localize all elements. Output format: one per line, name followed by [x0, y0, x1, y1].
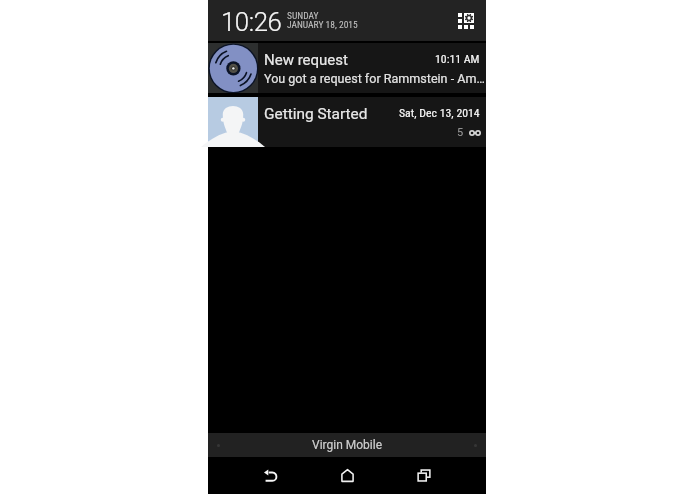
staticText: JANUARY 18, 2015: [287, 19, 358, 30]
staticText: Sat, Dec 13, 2014: [399, 106, 480, 120]
staticText: 5: [457, 126, 464, 139]
button[interactable]: Home: [322, 457, 372, 494]
button[interactable]: Quick settings: [452, 7, 480, 35]
staticText: 10:11 AM: [435, 52, 480, 66]
staticText: Getting Started: [264, 105, 368, 123]
button[interactable]: Virgin Mobile: [208, 433, 486, 457]
button[interactable]: New request: [208, 43, 486, 93]
button[interactable]: Recent apps: [399, 457, 449, 494]
button[interactable]: 10:26: [208, 0, 486, 41]
staticText: You got a request for Rammstein - Am…: [264, 71, 488, 86]
button[interactable]: Getting Started: [208, 97, 486, 147]
staticText: Virgin Mobile: [312, 438, 383, 452]
button[interactable]: Back: [245, 457, 295, 494]
staticText: 10:26: [221, 7, 282, 37]
staticText: SUNDAY: [287, 10, 319, 21]
staticText: New request: [264, 51, 348, 69]
